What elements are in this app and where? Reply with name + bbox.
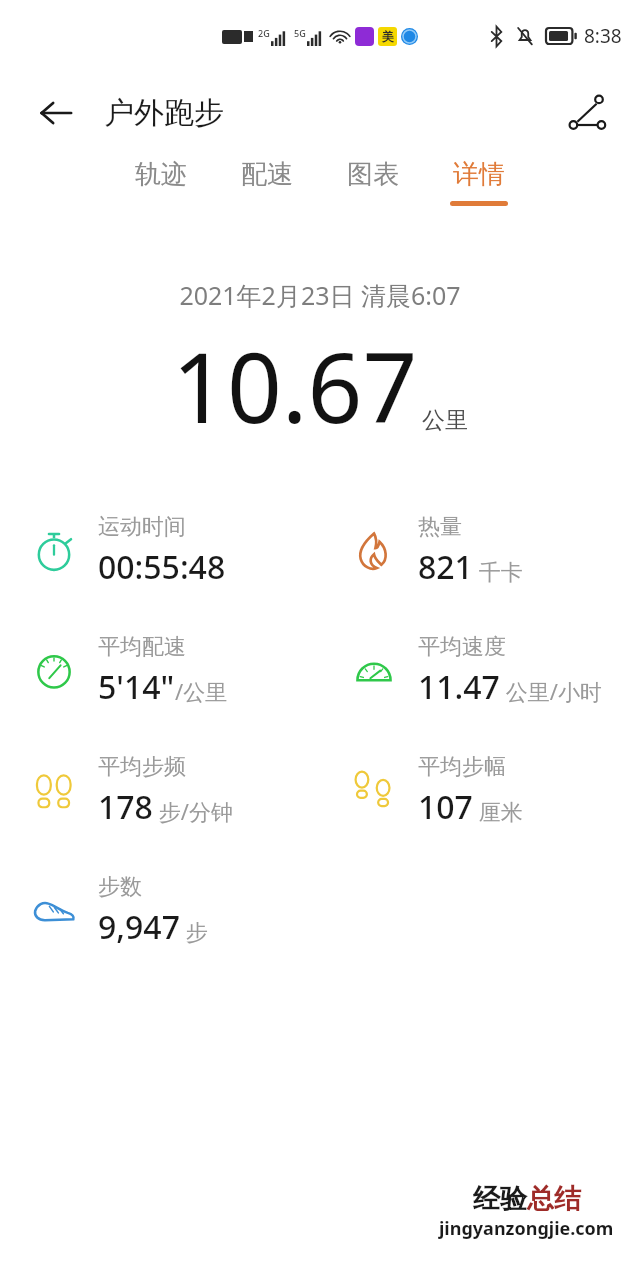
button[interactable]: Share [560, 86, 614, 140]
staticText: 配速 [241, 158, 293, 191]
button[interactable]: 步数 [0, 851, 320, 971]
staticText: /公里 [175, 676, 228, 706]
staticText: 厘米 [473, 796, 523, 826]
button[interactable]: 平均步幅 [320, 731, 640, 851]
staticText: 运动时间 [98, 513, 186, 541]
staticText: 详情 [453, 158, 505, 191]
staticText: 10.67 [172, 320, 418, 451]
staticText: 11.47 [418, 665, 500, 709]
staticText: 步数 [98, 873, 142, 901]
staticText: 8:38 [584, 23, 622, 49]
staticText: 平均配速 [98, 633, 186, 661]
button[interactable]: 平均步频 [0, 731, 320, 851]
staticText: 平均步频 [98, 753, 186, 781]
staticText: 5'14" [98, 665, 175, 709]
staticText: 平均速度 [418, 633, 506, 661]
staticText: 公里/小时 [500, 676, 602, 706]
button[interactable]: 热量 [320, 491, 640, 611]
staticText: jingyanzongjie.com [439, 1216, 614, 1241]
staticText: 2G [258, 27, 270, 39]
staticText: 9,947 [98, 905, 180, 949]
staticText: 平均步幅 [418, 753, 506, 781]
staticText: 总结 [527, 1182, 581, 1216]
button[interactable]: 平均速度 [320, 611, 640, 731]
staticText: 步/分钟 [153, 796, 233, 826]
staticText: 00:55:48 [98, 545, 226, 589]
button[interactable]: 运动时间 [0, 491, 320, 611]
staticText: 178 [98, 785, 153, 829]
staticText: 821 [418, 545, 473, 589]
staticText: 5G [294, 27, 306, 39]
button[interactable]: 平均配速 [0, 611, 320, 731]
button[interactable]: Back [30, 87, 82, 139]
staticText: 千卡 [473, 556, 523, 586]
staticText: 图表 [347, 158, 399, 191]
button[interactable]: 图表 [336, 154, 410, 210]
staticText: 经验 [473, 1182, 527, 1216]
staticText: 公里 [422, 406, 468, 435]
staticText: 美 [382, 29, 394, 44]
staticText: 热量 [418, 513, 462, 541]
staticText: 2021年2月23日 清晨6:07 [0, 278, 640, 312]
staticText: 107 [418, 785, 473, 829]
staticText: 轨迹 [135, 158, 187, 191]
button[interactable]: 轨迹 [124, 154, 198, 210]
staticText: 步 [180, 916, 208, 946]
staticText: 户外跑步 [104, 94, 224, 132]
button[interactable]: 配速 [230, 154, 304, 210]
button[interactable]: 详情 [442, 154, 516, 210]
